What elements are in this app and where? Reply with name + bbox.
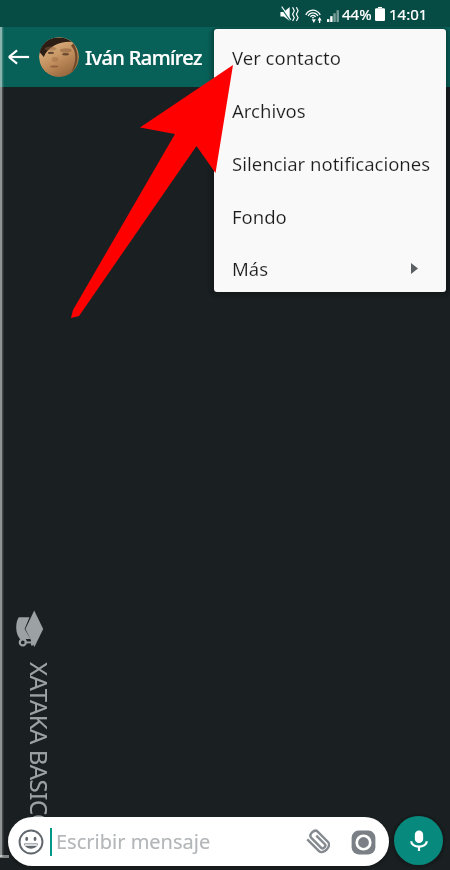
button[interactable]: Archivos	[214, 84, 446, 137]
button[interactable]: Emoji	[8, 817, 389, 866]
button[interactable]: Más	[214, 243, 446, 292]
button[interactable]: Voice message	[394, 816, 443, 865]
staticText: Ver contacto	[232, 45, 341, 70]
staticText: 14:01	[389, 4, 428, 24]
button[interactable]: Fondo	[214, 190, 446, 243]
button[interactable]: Camera	[348, 827, 378, 857]
staticText: Iván Ramírez	[85, 44, 202, 71]
button[interactable]: Profile photo	[39, 37, 79, 77]
staticText: Archivos	[232, 98, 306, 123]
staticText: 44%	[342, 4, 372, 24]
staticText: Silenciar notificaciones	[232, 151, 430, 176]
button[interactable]: Silenciar notificaciones	[214, 137, 446, 190]
button[interactable]: Emoji	[18, 829, 44, 855]
staticText: Más	[232, 256, 269, 281]
staticText: Fondo	[232, 204, 287, 229]
staticText: XATAKA BASICO	[16, 662, 56, 870]
button[interactable]: Attach	[302, 825, 336, 859]
button[interactable]: Ver contacto	[214, 31, 446, 84]
button[interactable]: Back	[0, 38, 38, 76]
staticText: Escribir mensaje	[56, 828, 302, 855]
